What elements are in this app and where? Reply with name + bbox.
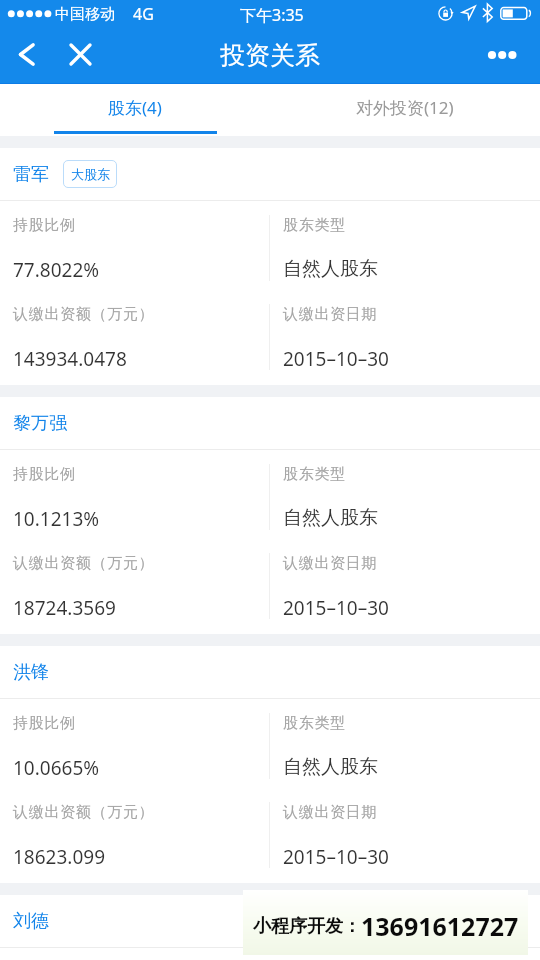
staticText: 下午3:35 [240,4,304,26]
button[interactable]: Back [6,34,46,74]
staticText: 143934.0478 [13,346,127,372]
staticText: 小程序开发： [253,915,361,938]
staticText: 4G [133,3,154,25]
staticText: 大股东 [71,166,110,182]
staticText: 雷军 [13,163,49,186]
staticText: 持股比例 [13,714,76,733]
staticText: 认缴出资额（万元） [13,305,155,324]
staticText: 18623.099 [13,844,106,870]
staticText: 10.0665% [13,755,100,781]
staticText: 持股比例 [13,465,76,484]
staticText: 自然人股东 [283,257,378,281]
staticText: 认缴出资日期 [283,554,378,573]
staticText: 股东类型 [283,465,346,484]
staticText: 黎万强 [13,412,67,435]
staticText: 自然人股东 [283,506,378,530]
button[interactable]: 洪锋 [13,646,540,698]
staticText: 股东类型 [283,714,346,733]
staticText: 对外投资(12) [356,96,454,119]
button[interactable]: 黎万强 [13,397,540,449]
staticText: 认缴出资日期 [283,803,378,822]
button[interactable]: 刘德 [13,895,540,947]
staticText: 刘德 [13,910,49,933]
staticText: 2015–10–30 [283,844,389,870]
staticText: 自然人股东 [283,755,378,779]
staticText: 2015–10–30 [283,595,389,621]
staticText: 2015–10–30 [283,346,389,372]
button[interactable]: 雷军 [13,148,540,200]
staticText: 13691612727 [361,909,519,943]
staticText: 持股比例 [13,216,76,235]
staticText: 10.1213% [13,506,100,532]
staticText: 中国移动 [55,5,115,24]
button[interactable]: 股东(4) [0,84,270,136]
staticText: 股东(4) [108,96,162,119]
staticText: 18724.3569 [13,595,116,621]
staticText: 洪锋 [13,661,49,684]
staticText: 股东类型 [283,216,346,235]
button[interactable]: Close [60,34,100,74]
staticText: 认缴出资日期 [283,305,378,324]
button[interactable]: 对外投资(12) [270,84,540,136]
staticText: 认缴出资额（万元） [13,554,155,573]
staticText: 投资关系 [220,40,320,71]
staticText: 认缴出资额（万元） [13,803,155,822]
button[interactable]: More options [486,35,526,75]
staticText: 77.8022% [13,257,100,283]
